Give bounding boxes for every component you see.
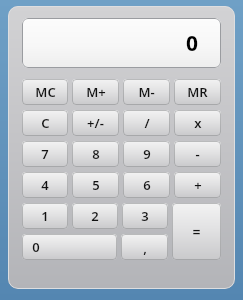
staticText: 1: [41, 207, 49, 225]
staticText: -: [195, 145, 200, 163]
staticText: C: [41, 114, 50, 132]
button[interactable]: MC: [22, 79, 68, 105]
button[interactable]: 4: [22, 172, 68, 198]
staticText: 9: [143, 145, 151, 163]
button[interactable]: 3: [122, 203, 168, 229]
staticText: 6: [143, 176, 151, 194]
button[interactable]: 8: [72, 141, 119, 167]
button[interactable]: ,: [121, 234, 168, 260]
staticText: 3: [141, 207, 149, 225]
staticText: M-: [138, 83, 155, 101]
button[interactable]: 0: [22, 234, 117, 260]
button[interactable]: 2: [72, 203, 118, 229]
staticText: ,: [143, 239, 147, 257]
staticText: 0: [32, 238, 40, 256]
button[interactable]: x: [174, 110, 221, 136]
staticText: +/-: [87, 114, 104, 132]
button[interactable]: MR: [174, 79, 221, 105]
button[interactable]: 9: [123, 141, 170, 167]
button[interactable]: /: [123, 110, 170, 136]
button[interactable]: +: [174, 172, 221, 198]
button[interactable]: 1: [22, 203, 68, 229]
button[interactable]: 6: [123, 172, 170, 198]
button[interactable]: M+: [72, 79, 119, 105]
button[interactable]: 5: [72, 172, 119, 198]
button[interactable]: =: [172, 203, 221, 260]
button[interactable]: 7: [22, 141, 68, 167]
staticText: MC: [35, 83, 56, 101]
button[interactable]: -: [174, 141, 221, 167]
staticText: 8: [92, 145, 100, 163]
staticText: 5: [92, 176, 100, 194]
staticText: 2: [91, 207, 99, 225]
staticText: x: [194, 114, 202, 132]
staticText: +: [194, 176, 202, 194]
button[interactable]: Display: [22, 18, 221, 68]
staticText: =: [192, 222, 201, 241]
button[interactable]: M-: [123, 79, 170, 105]
staticText: 4: [41, 176, 49, 194]
button[interactable]: +/-: [72, 110, 119, 136]
staticText: 7: [41, 145, 49, 163]
staticText: M+: [86, 83, 106, 101]
staticText: 0: [186, 29, 199, 58]
staticText: MR: [187, 83, 208, 101]
staticText: /: [144, 114, 150, 132]
button[interactable]: C: [22, 110, 68, 136]
